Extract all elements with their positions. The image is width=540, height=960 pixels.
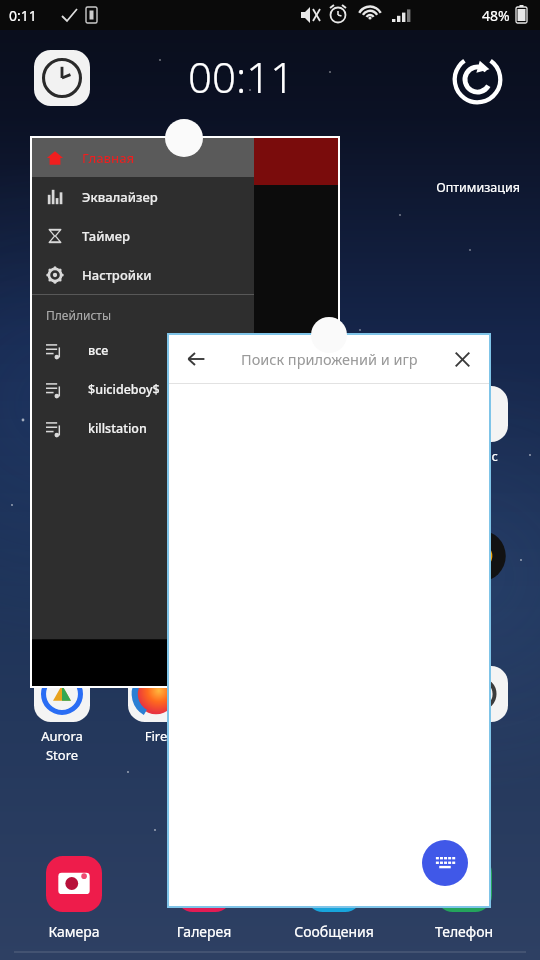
- staticText: 00:11: [188, 48, 295, 105]
- staticText: $uicideboy$: [88, 381, 160, 398]
- staticText: Fire: [128, 727, 184, 745]
- button[interactable]: Оптимизация: [449, 51, 506, 108]
- staticText: p3: [452, 727, 508, 745]
- button[interactable]: Music: [452, 386, 508, 442]
- button[interactable]: Назад: [177, 340, 215, 378]
- button[interactable]: Aurora Store: [34, 666, 90, 722]
- button[interactable]: Клавиатура: [422, 840, 468, 886]
- button[interactable]: killstation: [32, 409, 254, 448]
- button[interactable]: Firefox: [128, 666, 184, 722]
- button[interactable]: Главная: [32, 138, 254, 177]
- button[interactable]: p3: [452, 666, 508, 722]
- staticText: killstation: [88, 420, 147, 437]
- staticText: P: [452, 589, 508, 607]
- button[interactable]: все: [32, 331, 254, 370]
- button[interactable]: Сообщения: [306, 856, 362, 912]
- staticText: Телефон: [414, 922, 514, 941]
- button[interactable]: Закрыть: [443, 340, 481, 378]
- staticText: Эквалайзер: [82, 188, 158, 206]
- button[interactable]: Камера: [46, 856, 102, 912]
- button[interactable]: Галерея: [176, 856, 232, 912]
- button[interactable]: Настройки: [32, 255, 254, 294]
- button[interactable]: Эквалайзер: [32, 177, 254, 216]
- button[interactable]: Телефон: [436, 856, 492, 912]
- staticText: Настройки: [82, 266, 152, 284]
- staticText: 48%: [482, 6, 510, 25]
- button[interactable]: $uicideboy$: [32, 370, 254, 409]
- staticText: Music: [452, 447, 508, 465]
- staticText: Таймер: [82, 227, 130, 245]
- staticText: Галерея: [154, 922, 254, 941]
- button[interactable]: Часы: [34, 50, 90, 106]
- button[interactable]: P: [452, 528, 508, 584]
- staticText: Aurora Store: [18, 727, 106, 764]
- staticText: Камера: [24, 922, 124, 941]
- staticText: Сообщения: [284, 922, 384, 941]
- staticText: 0:11: [9, 6, 37, 25]
- staticText: все: [88, 342, 109, 359]
- button[interactable]: Таймер: [32, 216, 254, 255]
- staticText: Оптимизация: [421, 179, 535, 196]
- staticText: Главная: [82, 149, 135, 167]
- staticText: Поиск приложений и игр: [241, 349, 418, 369]
- staticText: Плейлисты: [46, 307, 112, 323]
